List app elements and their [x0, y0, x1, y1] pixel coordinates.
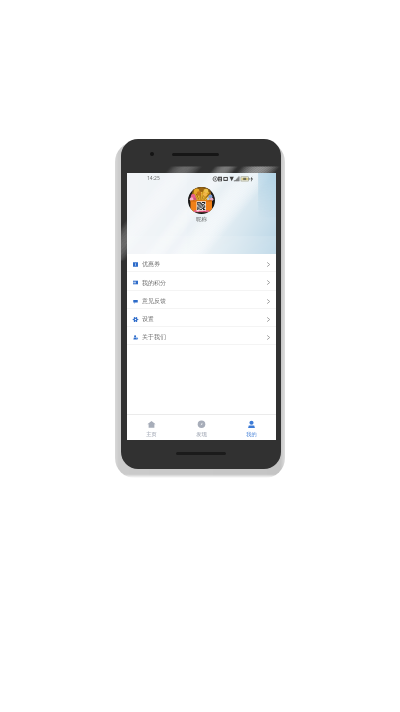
staticText: 关于我们	[142, 333, 166, 341]
button[interactable]: 我的	[226, 415, 276, 438]
staticText: 主页	[146, 431, 157, 438]
staticText: 昵称	[196, 216, 207, 223]
button[interactable]: 我的积分	[127, 272, 276, 291]
staticText: 发现	[196, 431, 207, 438]
staticText: 设置	[142, 315, 154, 323]
button[interactable]: 意见反馈	[127, 291, 276, 309]
button[interactable]: 主页	[127, 415, 176, 438]
staticText: 意见反馈	[142, 297, 166, 305]
button[interactable]: 优惠券	[127, 254, 276, 272]
staticText: 我的积分	[142, 279, 166, 287]
button[interactable]: 设置	[127, 309, 276, 327]
button[interactable]: 关于我们	[127, 327, 276, 345]
staticText: 14:25	[147, 175, 160, 182]
button[interactable]: 发现	[176, 415, 226, 438]
staticText: 优惠券	[142, 260, 160, 268]
staticText: 我的	[246, 431, 257, 438]
